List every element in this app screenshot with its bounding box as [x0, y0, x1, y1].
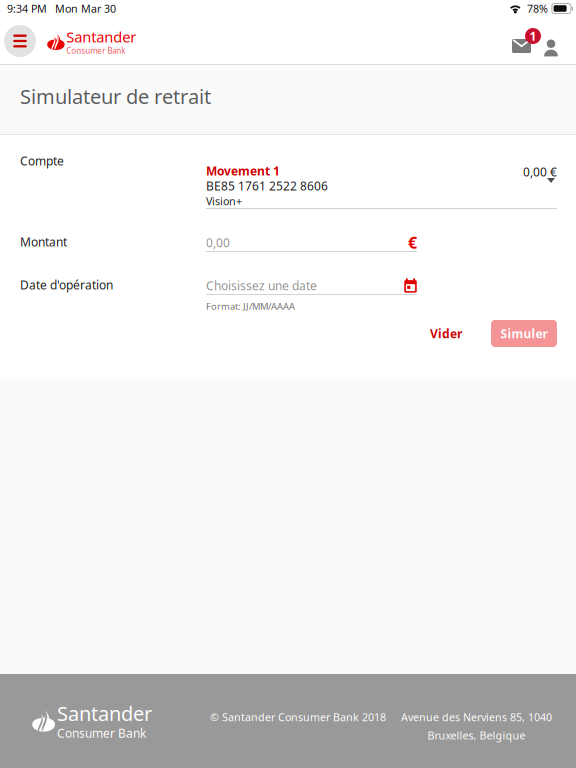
- button[interactable]: Messages: [512, 25, 542, 57]
- staticText: Vider: [430, 325, 462, 341]
- staticText: Compte: [20, 153, 64, 169]
- staticText: Avenue des Nerviens 85, 1040: [401, 710, 552, 724]
- staticText: Mon Mar 30: [55, 1, 116, 16]
- staticText: 0,00: [206, 234, 230, 250]
- button[interactable]: Simuler: [491, 320, 557, 347]
- staticText: €: [408, 232, 417, 253]
- button[interactable]: Movement 1: [206, 163, 557, 215]
- staticText: Montant: [20, 234, 67, 250]
- staticText: Simulateur de retrait: [20, 83, 211, 110]
- staticText: Simuler: [500, 325, 547, 341]
- staticText: 1: [529, 28, 536, 44]
- staticText: 78%: [527, 1, 548, 16]
- staticText: Date d'opération: [20, 277, 113, 293]
- staticText: Bruxelles, Belgique: [427, 728, 525, 742]
- staticText: 9:34 PM: [7, 1, 47, 16]
- staticText: Santander: [57, 700, 152, 727]
- button[interactable]: Account: [540, 34, 562, 62]
- staticText: © Santander Consumer Bank 2018: [210, 710, 386, 724]
- staticText: Consumer Bank: [66, 45, 125, 56]
- staticText: Santander: [66, 27, 136, 46]
- staticText: Format: JJ/MM/AAAA: [206, 300, 295, 312]
- staticText: Movement 1: [206, 163, 280, 179]
- staticText: Choisissez une date: [206, 277, 317, 293]
- staticText: 0,00 €: [523, 164, 557, 180]
- staticText: BE85 1761 2522 8606: [206, 178, 328, 194]
- button[interactable]: Vider: [420, 320, 472, 347]
- staticText: Vision+: [206, 194, 242, 208]
- button[interactable]: Menu: [0, 21, 40, 61]
- staticText: Consumer Bank: [57, 725, 146, 741]
